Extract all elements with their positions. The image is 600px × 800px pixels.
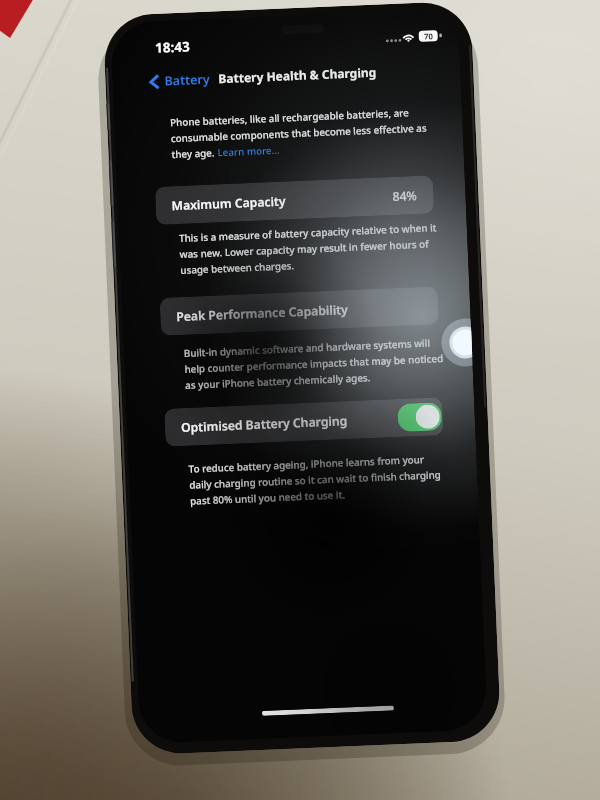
staticText: 70 xyxy=(424,30,434,42)
button[interactable]: Peak Performance Capability xyxy=(159,286,439,336)
staticText: 18:43 xyxy=(155,37,190,57)
staticText: Peak Performance Capability xyxy=(176,301,349,325)
staticText: Battery Health & Charging xyxy=(218,64,376,86)
staticText: This is a measure of battery capacity re… xyxy=(179,221,437,245)
button[interactable]: Back xyxy=(146,68,214,92)
staticText: Battery xyxy=(164,71,211,89)
staticText: Built-in dynamic software and hardware s… xyxy=(184,337,431,360)
staticText: 84% xyxy=(392,187,418,205)
button[interactable]: Maximum Capacity xyxy=(155,175,434,225)
button[interactable]: Optimised Battery Charging toggle xyxy=(397,402,442,432)
staticText: To reduce battery ageing, iPhone learns … xyxy=(188,453,425,476)
staticText: was new. Lower capacity may result in fe… xyxy=(179,237,430,261)
staticText: as your iPhone battery chemically ages. xyxy=(185,371,371,392)
other: Back xyxy=(149,74,160,90)
staticText: consumable components that become less e… xyxy=(171,122,427,145)
staticText: past 80% until you need to use it. xyxy=(190,488,345,508)
staticText: usage between charges. xyxy=(180,259,294,277)
staticText: Phone batteries, like all rechargeable b… xyxy=(170,106,409,129)
staticText: daily charging routine so it can wait to… xyxy=(189,468,441,492)
button[interactable]: Optimised Battery Charging xyxy=(164,397,443,447)
staticText: they age. xyxy=(171,146,218,161)
button[interactable]: Learn more… xyxy=(217,144,281,159)
staticText: Maximum Capacity xyxy=(171,192,286,214)
staticText: help counter performance impacts that ma… xyxy=(184,352,444,376)
staticText: Optimised Battery Charging xyxy=(181,412,348,436)
